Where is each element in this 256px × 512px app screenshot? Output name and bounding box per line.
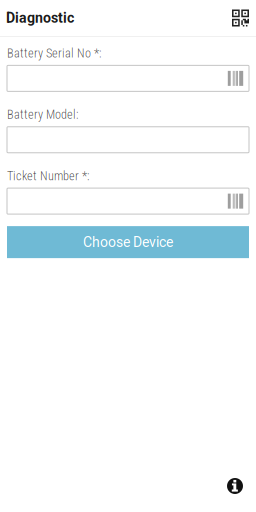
button[interactable]: Information [222, 473, 248, 499]
staticText: Battery Serial No *: [7, 46, 101, 60]
button[interactable]: Scan barcode [222, 6, 249, 29]
staticText: Choose Device [83, 234, 173, 250]
staticText: Diagnostic [6, 10, 74, 26]
button[interactable]: Battery Serial No [7, 65, 249, 91]
button[interactable]: Battery Model [7, 127, 249, 153]
button[interactable]: Ticket Number [7, 188, 249, 214]
staticText: Ticket Number *: [7, 169, 89, 183]
button[interactable]: Choose Device [7, 226, 249, 258]
staticText: Battery Model: [7, 107, 78, 122]
